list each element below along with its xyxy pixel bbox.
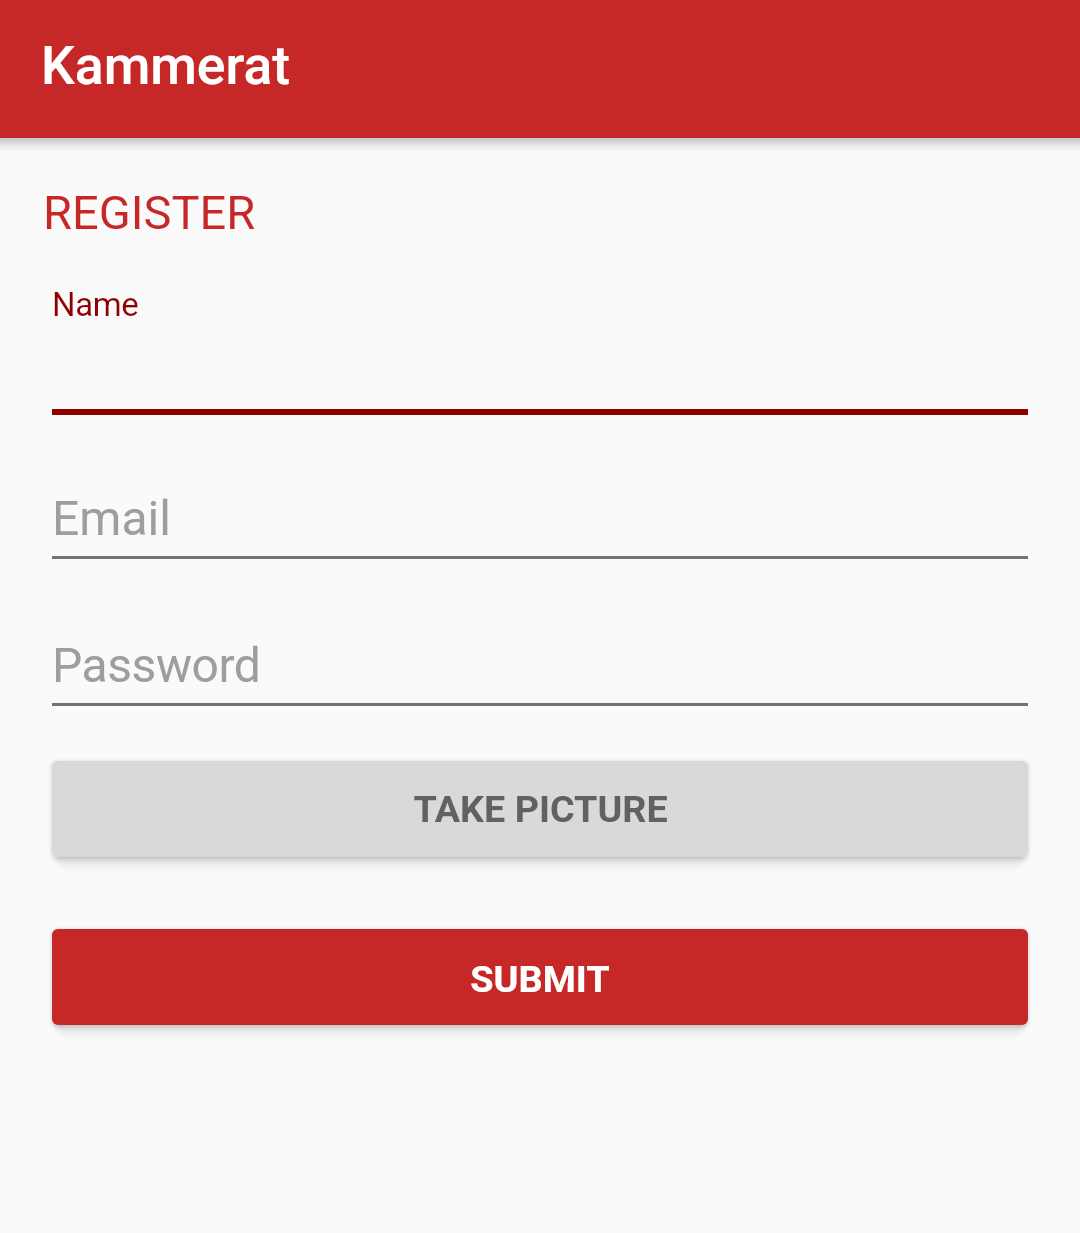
- button[interactable]: TAKE PICTURE: [52, 761, 1028, 857]
- staticText: Email: [52, 490, 171, 546]
- staticText: REGISTER: [43, 185, 256, 240]
- other: Kammerat app bar: [0, 0, 1080, 138]
- staticText: Kammerat: [41, 34, 291, 97]
- staticText: SUBMIT: [470, 957, 610, 1001]
- staticText: Name: [52, 285, 139, 324]
- button[interactable]: SUBMIT: [52, 929, 1028, 1025]
- staticText: TAKE PICTURE: [413, 787, 668, 831]
- button[interactable]: Name input field: [52, 270, 1028, 414]
- staticText: Password: [52, 637, 261, 693]
- button[interactable]: Password input field: [52, 617, 1028, 705]
- button[interactable]: Email input field: [52, 470, 1028, 558]
